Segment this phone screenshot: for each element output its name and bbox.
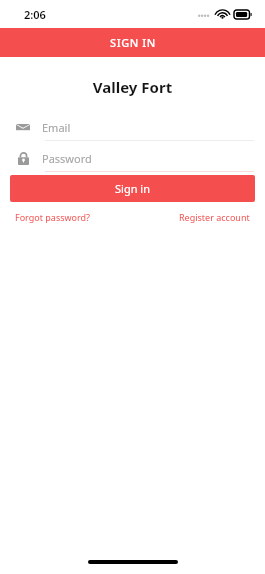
staticText: Valley Fort	[0, 77, 265, 97]
button[interactable]: Password icon	[0, 145, 265, 171]
staticText: Sign in	[115, 181, 150, 196]
staticText: Forgot password?	[15, 211, 91, 223]
staticText: Email	[42, 120, 71, 135]
staticText: 2:06	[24, 7, 46, 22]
other: Email icon	[15, 119, 31, 135]
button[interactable]: Forgot password?	[15, 211, 91, 223]
staticText: SIGN IN	[110, 35, 156, 50]
button[interactable]: SIGN IN	[0, 28, 265, 57]
staticText: Register account	[179, 211, 250, 223]
button[interactable]: Sign in	[10, 175, 255, 202]
button[interactable]: Email icon	[0, 114, 265, 140]
other: Password icon	[15, 150, 31, 166]
button[interactable]: Register account	[179, 211, 250, 223]
staticText: Password	[42, 151, 92, 166]
